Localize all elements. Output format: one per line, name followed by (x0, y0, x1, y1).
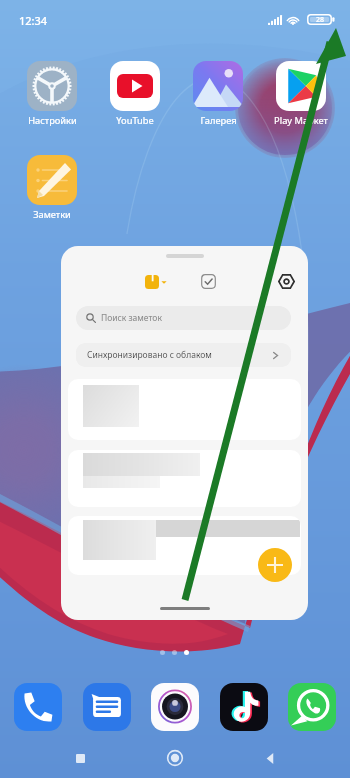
button[interactable]: Settings (278, 273, 295, 290)
button[interactable]: Recents (65, 743, 95, 773)
staticText: Синхронизировано с облаком (87, 349, 212, 361)
button[interactable]: Folder (145, 275, 167, 289)
button[interactable] (110, 61, 160, 111)
button[interactable] (27, 155, 77, 205)
button[interactable] (68, 379, 301, 440)
button[interactable] (68, 516, 301, 575)
button[interactable]: Add note (258, 548, 292, 582)
button[interactable]: Select notes (201, 274, 216, 289)
staticText: Настройки (28, 114, 77, 127)
button[interactable] (193, 61, 243, 111)
button[interactable]: WhatsApp (288, 683, 336, 731)
staticText: 12:34 (19, 13, 48, 28)
button[interactable]: Home (160, 743, 190, 773)
staticText: Заметки (33, 208, 71, 221)
staticText: Поиск заметок (101, 312, 162, 324)
button[interactable]: Camera (151, 683, 199, 731)
staticText: Play Маркет (274, 114, 328, 127)
button[interactable]: Синхронизировано с облаком (76, 343, 291, 367)
button[interactable]: Phone (14, 683, 62, 731)
staticText: YouTube (116, 114, 154, 127)
button[interactable] (276, 61, 326, 111)
button[interactable]: TikTok (220, 683, 268, 731)
button[interactable]: Messages (83, 683, 131, 731)
staticText: Галерея (200, 114, 237, 127)
button[interactable] (68, 450, 301, 507)
staticText: 28 (316, 15, 325, 25)
button[interactable]: Back (255, 743, 285, 773)
button[interactable] (27, 61, 77, 111)
button[interactable]: Поиск заметок (76, 306, 291, 330)
